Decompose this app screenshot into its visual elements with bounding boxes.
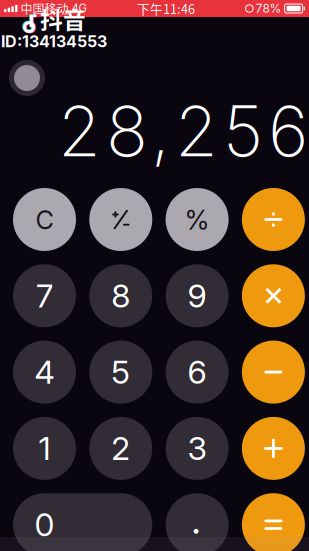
button[interactable]: 1 [13, 417, 76, 480]
staticText: 0 [34, 505, 54, 544]
button[interactable]: Equals [242, 493, 305, 551]
staticText: . [191, 495, 200, 543]
staticText: 8 [111, 276, 130, 315]
staticText: 2 [111, 429, 130, 468]
staticText: 9 [188, 276, 207, 315]
button[interactable]: 4 [13, 341, 76, 404]
button[interactable]: 8 [89, 264, 152, 327]
staticText: 中国移动 [20, 0, 68, 17]
button[interactable]: Add [242, 417, 305, 480]
staticText: 1 [38, 429, 50, 468]
staticText: 抖音 [40, 2, 86, 35]
staticText: 5 [111, 353, 130, 391]
staticText: 下午11:46 [137, 0, 195, 18]
staticText: 3 [188, 429, 207, 468]
button[interactable]: 2 [89, 417, 152, 480]
button[interactable]: C [13, 188, 76, 251]
button[interactable]: Plus minus [89, 188, 152, 251]
button[interactable]: % [166, 188, 229, 251]
button[interactable]: 3 [166, 417, 229, 480]
staticText: 7 [36, 276, 53, 315]
staticText: 28,256 [58, 89, 308, 173]
button[interactable]: 6 [166, 341, 229, 404]
staticText: C [35, 205, 53, 235]
button[interactable]: 5 [89, 341, 152, 404]
staticText: 6 [188, 353, 207, 391]
staticText: 4 [34, 353, 54, 391]
button[interactable]: Subtract [242, 341, 305, 404]
button[interactable]: Multiply [242, 264, 305, 327]
staticText: 4G [71, 2, 86, 15]
button[interactable]: 7 [13, 264, 76, 327]
staticText: % [185, 204, 210, 236]
button[interactable]: . [166, 493, 229, 551]
button[interactable]: 9 [166, 264, 229, 327]
button[interactable]: 0 [13, 493, 152, 551]
staticText: ID:134134553 [1, 32, 107, 51]
staticText: 78% [256, 1, 282, 16]
button[interactable]: Divide [242, 188, 305, 251]
